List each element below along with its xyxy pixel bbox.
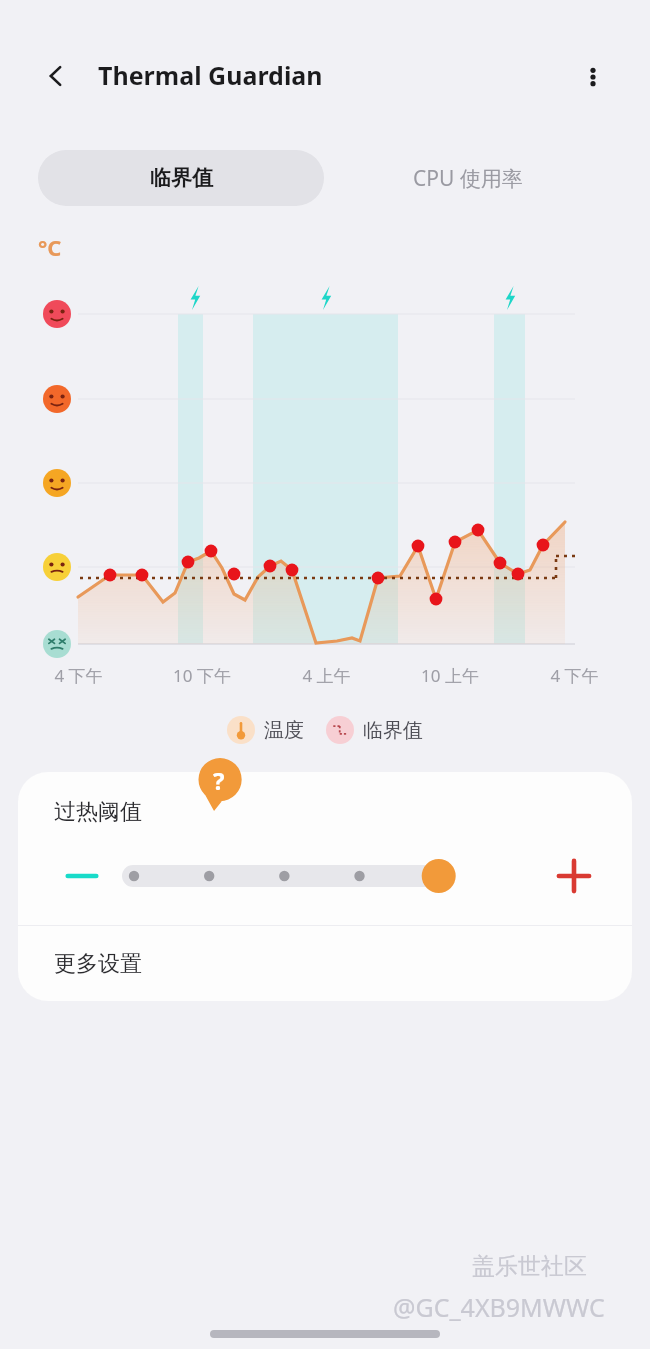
staticText: Thermal Guardian <box>98 58 323 92</box>
staticText: 更多设置 <box>54 950 142 978</box>
staticText: 临界值 <box>150 165 213 191</box>
staticText: 10 下午 <box>173 664 231 687</box>
button[interactable]: 更多设置 <box>18 926 632 1001</box>
staticText: °C <box>38 232 62 262</box>
staticText: 过热阈值 <box>54 798 142 826</box>
button[interactable]: Back <box>32 52 80 100</box>
staticText: 临界值 <box>363 718 423 743</box>
staticText: 4 下午 <box>550 664 599 687</box>
button[interactable]: Help <box>192 758 246 812</box>
button[interactable]: Decrease <box>54 848 110 904</box>
staticText: 4 上午 <box>302 664 351 687</box>
staticText: 10 上午 <box>421 664 479 687</box>
button[interactable] <box>122 856 462 896</box>
button[interactable]: Increase <box>546 848 602 904</box>
button[interactable]: CPU 使用率 <box>324 150 612 206</box>
button[interactable]: 临界值 <box>38 150 324 206</box>
staticText: 4 下午 <box>54 664 103 687</box>
staticText: 盖乐世社区 <box>472 1252 587 1281</box>
button[interactable]: 温度 <box>227 716 304 744</box>
staticText: CPU 使用率 <box>413 164 523 193</box>
staticText: @GC_4XB9MWWC <box>393 1290 605 1324</box>
staticText: 温度 <box>264 718 304 743</box>
button[interactable]: More options <box>569 53 617 101</box>
staticText: ? <box>213 764 225 797</box>
button[interactable]: 临界值 <box>326 716 423 744</box>
